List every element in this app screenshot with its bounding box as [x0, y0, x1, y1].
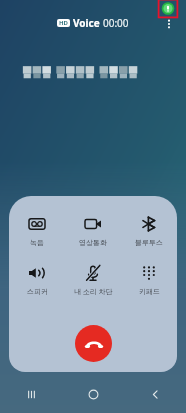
button[interactable]: More options — [156, 11, 182, 37]
staticText: 내 소리 차단 — [74, 287, 113, 297]
button[interactable]: 스피커 — [9, 261, 65, 298]
button[interactable]: 블루투스 — [121, 212, 177, 249]
staticText: 영상통화 — [79, 238, 107, 247]
button[interactable]: 키패드 — [121, 261, 177, 298]
button[interactable]: 녹음 — [9, 212, 65, 249]
button[interactable]: Recents — [0, 375, 62, 413]
staticText: 스피커 — [27, 287, 48, 296]
button[interactable]: 영상통화 — [65, 212, 121, 249]
staticText: 블루투스 — [135, 238, 163, 247]
button[interactable]: End call — [75, 325, 112, 362]
staticText: Voice — [73, 16, 100, 30]
staticText: 00:00 — [103, 16, 129, 30]
staticText: 키패드 — [139, 287, 160, 296]
staticText: HD — [59, 19, 68, 27]
button[interactable]: 내 소리 차단 — [65, 261, 121, 299]
button[interactable]: Back — [124, 375, 186, 413]
staticText: 녹음 — [30, 238, 44, 247]
button[interactable]: Home — [62, 375, 124, 413]
button[interactable]: Voice recording active — [158, 0, 178, 18]
